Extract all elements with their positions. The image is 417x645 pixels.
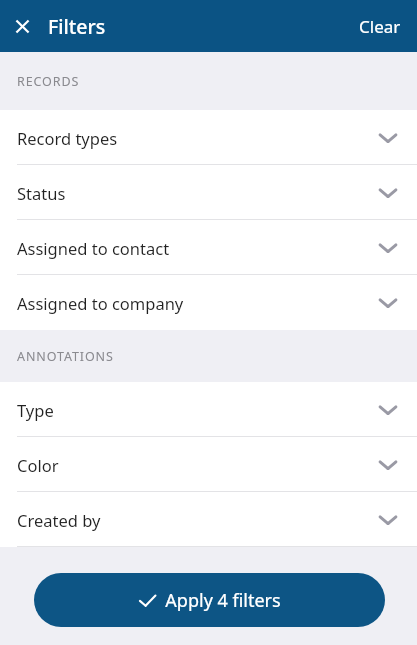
button[interactable]: Color <box>0 437 417 492</box>
staticText: Filters <box>48 13 106 40</box>
staticText: Type <box>17 399 54 421</box>
button[interactable]: Created by <box>0 492 417 547</box>
staticText: Clear <box>359 15 401 38</box>
staticText: Assigned to contact <box>17 237 170 259</box>
staticText: Assigned to company <box>17 292 184 314</box>
button[interactable]: Apply 4 filters <box>34 573 385 627</box>
button[interactable]: Assigned to company <box>0 275 417 330</box>
staticText: Record types <box>17 127 118 149</box>
staticText: Created by <box>17 509 101 531</box>
button[interactable]: Record types <box>0 110 417 165</box>
staticText: RECORDS <box>17 73 80 90</box>
button[interactable]: Status <box>0 165 417 220</box>
button[interactable]: Close <box>7 11 37 41</box>
staticText: Color <box>17 454 59 476</box>
staticText: Status <box>17 182 66 204</box>
staticText: Apply 4 filters <box>165 588 281 613</box>
staticText: ANNOTATIONS <box>17 348 114 365</box>
button[interactable]: Clear <box>343 7 417 46</box>
button[interactable]: Assigned to contact <box>0 220 417 275</box>
button[interactable]: Type <box>0 382 417 437</box>
